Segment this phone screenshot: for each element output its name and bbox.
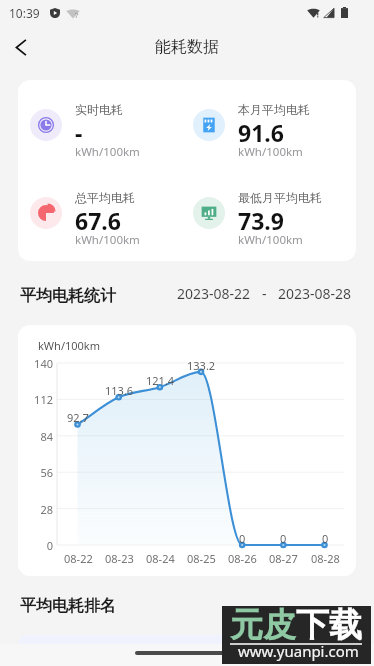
button[interactable]	[18, 635, 356, 644]
button[interactable]: 总平均电耗	[18, 190, 181, 248]
staticText: 84	[40, 429, 53, 444]
button[interactable]: 2023-08-22	[177, 287, 352, 306]
staticText: -	[75, 117, 83, 144]
staticText: kWh/100km	[75, 232, 140, 248]
staticText: 2023-08-28	[278, 284, 352, 303]
staticText: -	[251, 284, 278, 303]
staticText: 下载	[296, 606, 362, 646]
staticText: 0	[322, 531, 329, 546]
staticText: 最低月平均电耗	[238, 190, 322, 205]
staticText: 10:39	[9, 5, 40, 21]
button[interactable]: 实时电耗	[18, 102, 181, 160]
button[interactable]: 本月平均电耗	[181, 102, 356, 160]
staticText: 平均电耗统计	[20, 286, 116, 306]
staticText: 0	[46, 538, 53, 553]
staticText: 08-28	[311, 551, 340, 566]
staticText: 2023-08-22	[177, 284, 251, 303]
staticText: 08-27	[269, 551, 298, 566]
staticText: 0	[239, 531, 246, 546]
staticText: 133.2	[187, 358, 216, 373]
staticText: 113.6	[105, 383, 134, 398]
staticText: kWh/100km	[38, 338, 101, 353]
button[interactable]: 最低月平均电耗	[181, 190, 356, 248]
staticText: www.yuanpi.com	[238, 641, 359, 661]
button[interactable]: Back	[0, 26, 42, 68]
staticText: 实时电耗	[75, 102, 123, 117]
staticText: kWh/100km	[238, 144, 303, 160]
staticText: 08-24	[146, 551, 175, 566]
staticText: 92.7	[67, 410, 89, 425]
staticText: 56	[40, 465, 53, 480]
staticText: 0	[280, 531, 287, 546]
staticText: 08-25	[187, 551, 216, 566]
staticText: 总平均电耗	[75, 190, 135, 205]
staticText: 112	[34, 392, 53, 407]
staticText: 73.9	[238, 205, 284, 232]
staticText: 67.6	[75, 205, 121, 232]
staticText: 08-26	[228, 551, 257, 566]
staticText: kWh/100km	[75, 144, 140, 160]
staticText: 平均电耗排名	[20, 596, 116, 616]
staticText: 121.4	[146, 373, 175, 388]
staticText: 28	[40, 502, 53, 517]
staticText: 能耗数据	[155, 37, 219, 57]
staticText: 91.6	[238, 117, 284, 144]
staticText: 08-23	[105, 551, 134, 566]
staticText: 08-22	[64, 551, 93, 566]
staticText: kWh/100km	[238, 232, 303, 248]
staticText: 元皮	[230, 606, 296, 646]
staticText: 本月平均电耗	[238, 102, 310, 117]
staticText: 140	[34, 356, 53, 371]
